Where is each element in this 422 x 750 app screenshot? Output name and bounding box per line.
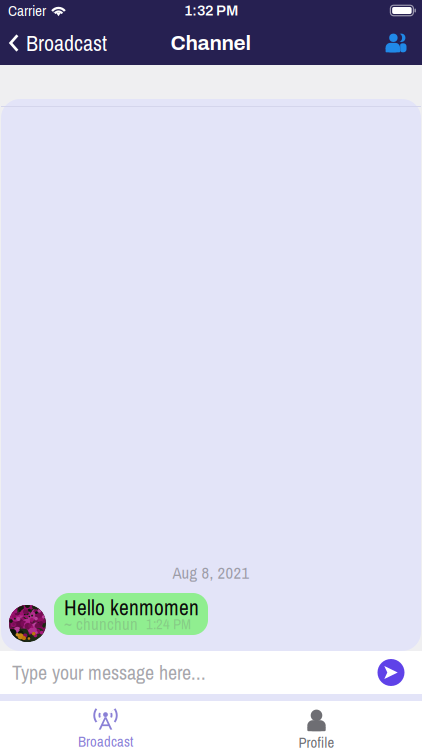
staticText: ~ chunchun xyxy=(64,613,138,635)
staticText: Channel xyxy=(170,32,251,54)
staticText: Broadcast xyxy=(26,28,107,58)
button[interactable]: Send message xyxy=(369,651,413,694)
staticText: Type your message here... xyxy=(12,659,206,686)
staticText: 1:24 PM xyxy=(146,614,191,634)
button[interactable]: Broadcast xyxy=(0,701,211,750)
button[interactable]: Profile xyxy=(211,700,422,750)
button[interactable]: Broadcast xyxy=(0,20,115,66)
staticText: Hello kenmomen xyxy=(64,593,199,622)
staticText: Aug 8, 2021 xyxy=(172,561,249,584)
staticText: Carrier xyxy=(8,0,46,21)
staticText: Broadcast xyxy=(78,732,133,750)
staticText: 1:32 PM xyxy=(184,2,238,18)
button[interactable]: Channel members xyxy=(369,25,422,61)
staticText: Profile xyxy=(298,733,334,750)
